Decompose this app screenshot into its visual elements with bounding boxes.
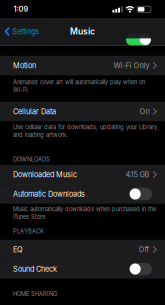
staticText: Use cellular data for downloads, updatin… bbox=[13, 124, 159, 131]
staticText: HOME SHARING bbox=[13, 290, 57, 297]
button[interactable]: Cellular Data bbox=[0, 102, 165, 121]
staticText: PLAYBACK bbox=[13, 228, 44, 235]
staticText: Music bbox=[70, 26, 95, 37]
staticText: 1:09 bbox=[13, 5, 28, 13]
staticText: DOWNLOADS bbox=[13, 156, 50, 163]
staticText: 4.15 GB bbox=[125, 170, 149, 179]
staticText: Music automatically downloads when purch… bbox=[13, 206, 156, 213]
staticText: Animated cover art will automatically pl… bbox=[13, 79, 145, 86]
staticText: Settings bbox=[12, 27, 39, 36]
button[interactable]: EQ bbox=[0, 240, 165, 259]
staticText: Wi-Fi. bbox=[13, 86, 29, 93]
staticText: iTunes Store. bbox=[13, 213, 47, 220]
button[interactable]: Automatic Downloads bbox=[129, 188, 152, 200]
staticText: Automatic Downloads bbox=[13, 190, 85, 198]
button[interactable]: Back bbox=[5, 25, 39, 37]
staticText: EQ bbox=[13, 245, 23, 254]
button[interactable]: Show Apple Music bbox=[126, 33, 151, 46]
button[interactable]: Motion bbox=[0, 56, 165, 75]
staticText: Downloaded Music bbox=[13, 170, 77, 179]
staticText: Wi-Fi Only bbox=[113, 61, 149, 70]
staticText: Cellular Data bbox=[13, 107, 56, 116]
button[interactable]: Sound Check bbox=[129, 263, 152, 275]
button[interactable]: Downloaded Music bbox=[0, 165, 165, 184]
staticText: Motion bbox=[13, 61, 36, 70]
staticText: Off bbox=[138, 245, 149, 254]
staticText: and loading artwork. bbox=[13, 131, 68, 138]
staticText: Sound Check bbox=[13, 265, 57, 273]
staticText: On bbox=[139, 107, 149, 116]
